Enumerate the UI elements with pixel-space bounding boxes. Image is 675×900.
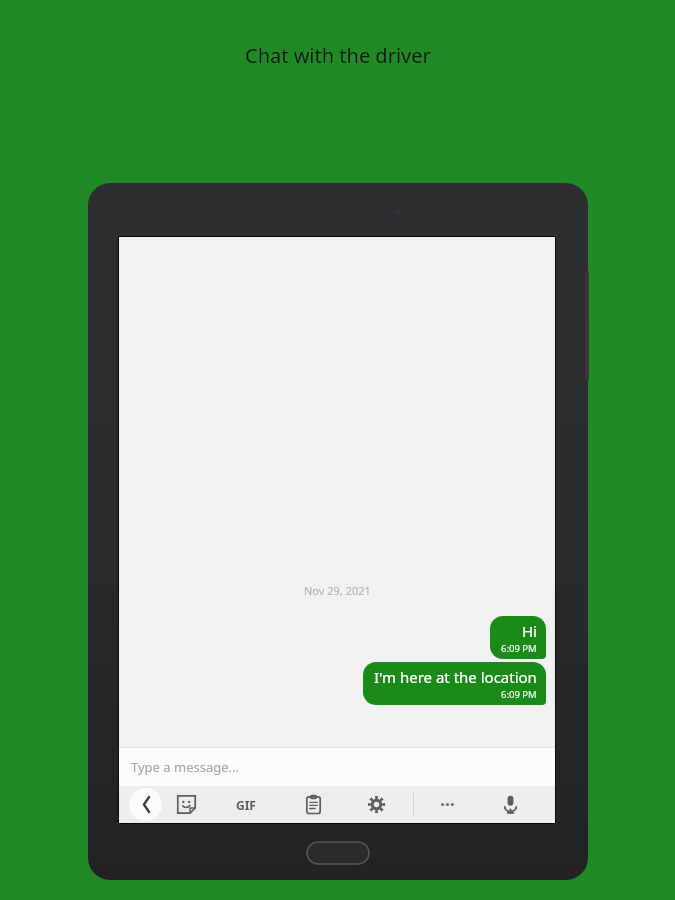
staticText: 6:09 PM [501, 688, 537, 701]
button[interactable]: Settings [362, 790, 391, 819]
button[interactable]: Clipboard [299, 790, 328, 819]
button[interactable]: Stickers [172, 790, 201, 819]
button[interactable]: Voice message [496, 790, 525, 819]
staticText: Chat with the driver [245, 42, 431, 69]
staticText: Nov 29, 2021 [304, 583, 371, 598]
button[interactable]: Type a message... [119, 748, 555, 786]
staticText: GIF [236, 797, 256, 813]
button[interactable]: Back [129, 788, 162, 821]
staticText: Hi [522, 621, 537, 641]
button[interactable]: I'm here at the location [363, 662, 546, 705]
button[interactable]: More options [433, 790, 462, 819]
staticText: Type a message... [131, 758, 239, 776]
staticText: I'm here at the location [374, 667, 537, 687]
button[interactable]: Hi [490, 616, 546, 659]
staticText: 6:09 PM [501, 642, 537, 655]
button[interactable]: Home [306, 841, 370, 865]
button[interactable]: GIF [229, 790, 263, 819]
